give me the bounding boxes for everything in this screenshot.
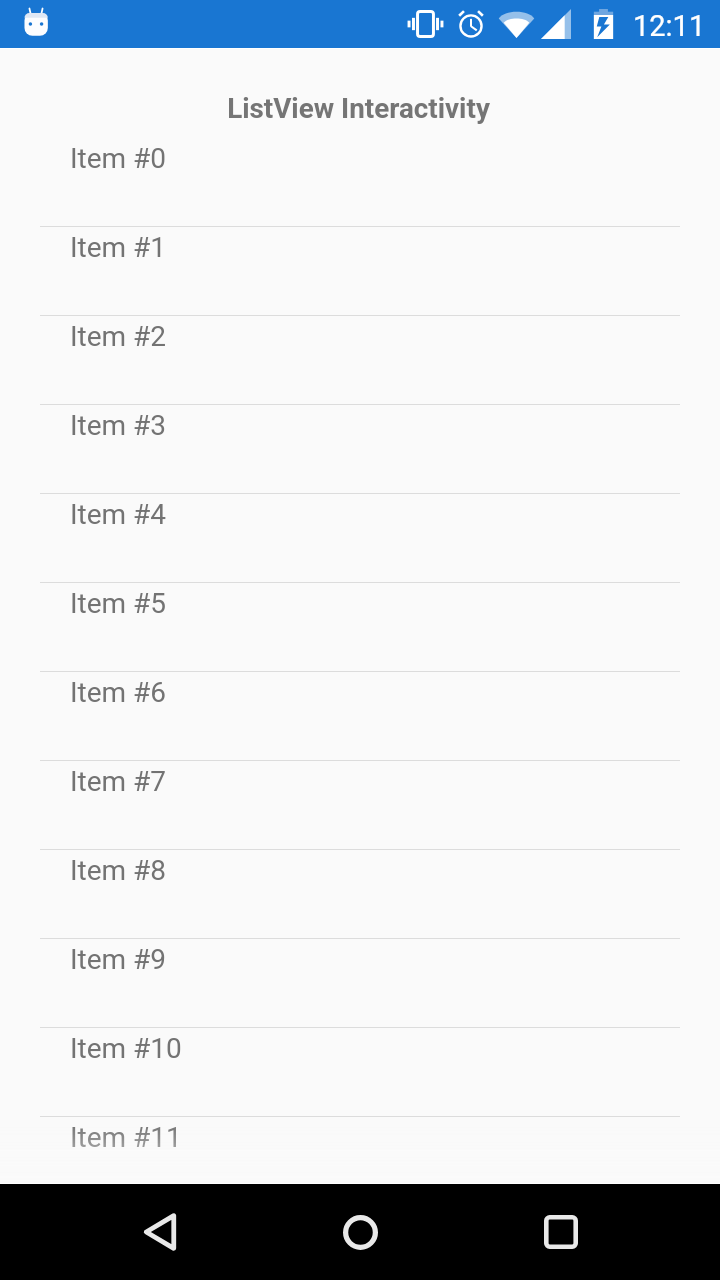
button[interactable]: Item #5 xyxy=(0,583,720,672)
staticText: 12:11 xyxy=(633,9,706,43)
staticText: Item #9 xyxy=(70,943,167,976)
button[interactable]: Item #11 xyxy=(0,1117,720,1184)
button[interactable]: Item #3 xyxy=(0,405,720,494)
button[interactable]: Item #10 xyxy=(0,1028,720,1117)
staticText: Item #10 xyxy=(70,1032,182,1065)
button[interactable]: Home xyxy=(320,1184,400,1280)
staticText: Item #4 xyxy=(70,498,167,531)
staticText: ListView Interactivity xyxy=(227,92,490,125)
button[interactable]: Item #7 xyxy=(0,761,720,850)
button[interactable]: Recent apps xyxy=(521,1184,601,1280)
button[interactable]: Item #0 xyxy=(0,138,720,227)
button[interactable]: Item #9 xyxy=(0,939,720,1028)
button[interactable]: Item #6 xyxy=(0,672,720,761)
staticText: Item #3 xyxy=(70,409,167,442)
staticText: Item #0 xyxy=(70,142,167,175)
staticText: Item #1 xyxy=(70,231,167,264)
button[interactable]: Item #2 xyxy=(0,316,720,405)
staticText: Item #5 xyxy=(70,587,167,620)
staticText: Item #8 xyxy=(70,854,167,887)
button[interactable]: Item #8 xyxy=(0,850,720,939)
staticText: Item #2 xyxy=(70,320,167,353)
staticText: Item #6 xyxy=(70,676,167,709)
staticText: Item #11 xyxy=(70,1121,182,1154)
staticText: Item #7 xyxy=(70,765,167,798)
button[interactable]: Back xyxy=(120,1184,200,1280)
button[interactable]: Item #4 xyxy=(0,494,720,583)
button[interactable]: Item #1 xyxy=(0,227,720,316)
